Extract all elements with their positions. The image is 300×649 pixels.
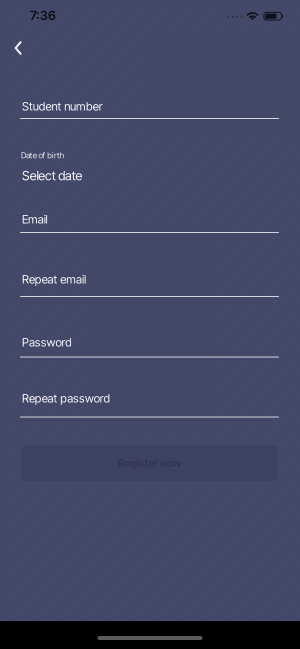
button[interactable]: Student number: [20, 95, 280, 120]
staticText: Email: [22, 212, 48, 226]
staticText: Student number: [22, 99, 103, 113]
button[interactable]: Password: [20, 331, 280, 358]
staticText: Date of birth: [21, 150, 64, 160]
staticText: Select date: [22, 168, 82, 183]
button[interactable]: Back: [6, 34, 300, 649]
button[interactable]: Repeat email: [20, 268, 280, 298]
staticText: Repeat password: [22, 391, 111, 405]
staticText: 7:36: [30, 8, 56, 23]
staticText: Register now: [117, 456, 181, 470]
staticText: Password: [22, 335, 72, 349]
button[interactable]: Email: [20, 208, 280, 234]
button[interactable]: Repeat password: [20, 387, 280, 418]
button[interactable]: Date of birth: [20, 148, 280, 188]
staticText: Repeat email: [22, 272, 86, 286]
